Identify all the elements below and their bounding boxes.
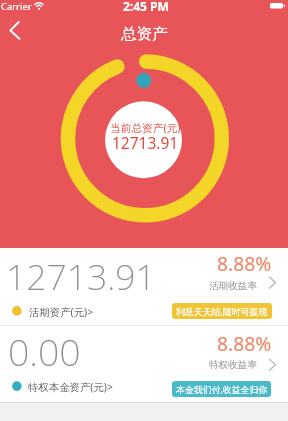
staticText: 当前总资产(元) — [110, 121, 181, 136]
staticText: 8.88% — [217, 330, 272, 356]
staticText: 0.00 — [8, 326, 81, 376]
button[interactable]: 本金我们付,收益全归你 — [172, 381, 271, 397]
staticText: 利息天天结,随时可提现 — [176, 305, 268, 317]
staticText: 活期收益率 — [209, 280, 257, 292]
staticText: 8.88% — [217, 250, 272, 276]
button[interactable] — [4, 300, 114, 322]
staticText: 本金我们付,收益全归你 — [176, 383, 268, 395]
staticText: 2:45 PM — [123, 0, 169, 14]
button[interactable]: 利息天天结,随时可提现 — [172, 303, 272, 319]
button[interactable] — [0, 14, 36, 48]
staticText: 特权收益率 — [209, 359, 257, 371]
staticText: 12713.91 — [112, 132, 179, 153]
staticText: 活期资产(元)> — [29, 305, 94, 319]
staticText: 12713.91 — [6, 252, 156, 300]
staticText: 总资产 — [121, 24, 168, 44]
button[interactable] — [200, 355, 280, 375]
button[interactable] — [200, 274, 280, 294]
staticText: Carrier — [1, 0, 32, 13]
staticText: 特权本金资产(元)> — [28, 380, 113, 394]
button[interactable] — [4, 376, 124, 398]
